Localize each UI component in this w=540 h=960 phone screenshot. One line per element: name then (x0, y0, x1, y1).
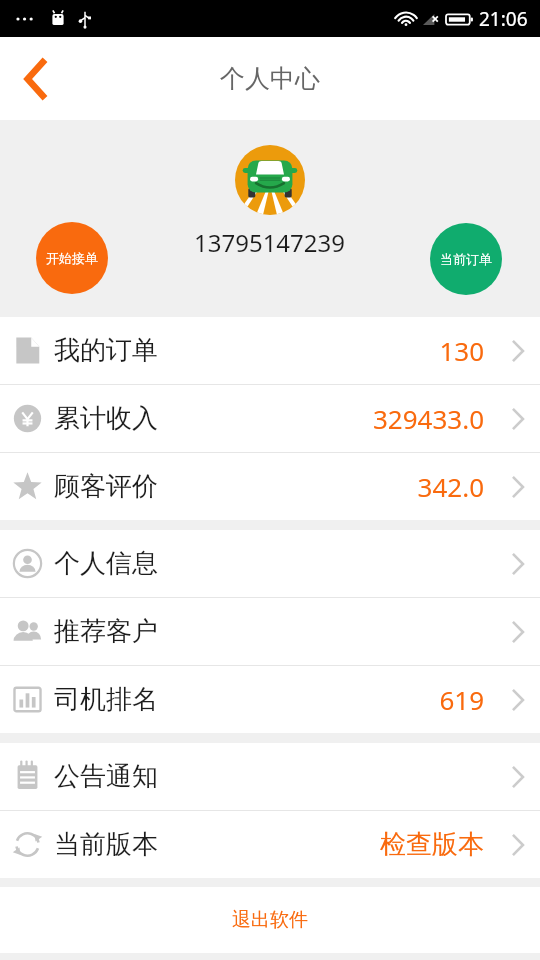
button[interactable]: Back (0, 37, 72, 120)
button[interactable]: 公告通知 (0, 743, 540, 810)
staticText: 当前版本 (54, 828, 158, 861)
button[interactable]: 推荐客户 (0, 598, 540, 665)
button[interactable]: 当前订单 (430, 223, 502, 295)
staticText: 推荐客户 (54, 615, 158, 648)
staticText: 329433.0 (372, 401, 484, 436)
staticText: 342.0 (417, 469, 484, 504)
button[interactable]: 顾客评价 (0, 453, 540, 520)
staticText: 130 (439, 333, 484, 368)
staticText: 个人信息 (54, 547, 158, 580)
staticText: 当前订单 (440, 251, 492, 267)
staticText: 公告通知 (54, 760, 158, 793)
staticText: 顾客评价 (54, 470, 158, 503)
staticText: 13795147239 (194, 226, 346, 259)
staticText: 619 (439, 682, 484, 717)
staticText: 累计收入 (54, 402, 158, 435)
button[interactable]: Avatar (235, 145, 305, 215)
button[interactable]: 退出软件 (0, 887, 540, 953)
staticText: 我的订单 (54, 334, 158, 367)
staticText: 司机排名 (54, 683, 158, 716)
staticText: 个人中心 (220, 63, 320, 94)
staticText: 开始接单 (46, 250, 98, 266)
button[interactable]: 个人信息 (0, 530, 540, 597)
button[interactable]: 我的订单 (0, 317, 540, 384)
button[interactable]: 司机排名 (0, 666, 540, 733)
button[interactable]: 累计收入 (0, 385, 540, 452)
staticText: 检查版本 (380, 828, 484, 861)
button[interactable]: 当前版本 (0, 811, 540, 878)
staticText: 退出软件 (232, 908, 308, 932)
staticText: 21:06 (479, 6, 528, 32)
button[interactable]: 开始接单 (36, 222, 108, 294)
